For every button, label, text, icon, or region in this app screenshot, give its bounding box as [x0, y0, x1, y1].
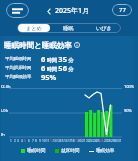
button[interactable]: 睡眠 [52, 24, 85, 32]
staticText: 21 [82, 139, 86, 143]
staticText: 平均就床時間 [5, 65, 32, 71]
staticText: 8 [35, 139, 37, 143]
staticText: 6 時間 56 分 [41, 63, 74, 72]
staticText: まとめ [26, 25, 42, 32]
staticText: 3 [17, 139, 19, 143]
button[interactable]: Sleep score [112, 4, 132, 16]
staticText: 就床時間 [61, 148, 80, 154]
staticText: 18 [71, 139, 75, 143]
staticText: 13 [53, 139, 57, 143]
staticText: 6 時間 35 分 [41, 54, 74, 63]
staticText: 20 [78, 139, 82, 143]
staticText: 31 [118, 139, 122, 143]
staticText: 12.0h [1, 84, 11, 89]
staticText: 11 [46, 139, 50, 143]
staticText: 100% [124, 84, 134, 89]
staticText: 77 [119, 6, 126, 14]
staticText: 睡眠効率 [96, 148, 115, 154]
staticText: 90% [124, 108, 132, 113]
staticText: 9 [39, 139, 41, 143]
staticText: 5 [24, 139, 26, 143]
staticText: 睡眠 [63, 25, 74, 32]
staticText: 平均睡眠時間 [5, 56, 32, 62]
staticText: 10 [42, 139, 46, 143]
staticText: 睡眠時間と睡眠効率 [4, 41, 72, 50]
staticText: 19 [75, 139, 79, 143]
staticText: 平均睡眠効率 [5, 74, 32, 80]
staticText: 14 [57, 139, 61, 143]
staticText: 95% [41, 72, 57, 81]
staticText: 30 [114, 139, 118, 143]
staticText: 睡眠時間 [27, 148, 46, 154]
staticText: 6.0h [1, 108, 9, 113]
staticText: 16 [64, 139, 68, 143]
staticText: 28 [107, 139, 111, 143]
button[interactable]: Previous month [45, 7, 53, 15]
staticText: 7 [32, 139, 34, 143]
button[interactable]: Menu [6, 3, 29, 18]
staticText: 0h [1, 132, 5, 137]
staticText: 2 [14, 139, 16, 143]
staticText: 23 [89, 139, 93, 143]
staticText: 22 [86, 139, 90, 143]
staticText: 26 [100, 139, 104, 143]
staticText: 6 [28, 139, 30, 143]
button[interactable]: Information [74, 42, 80, 48]
staticText: 4 [21, 139, 23, 143]
staticText: 12 [50, 139, 54, 143]
staticText: 27 [104, 139, 108, 143]
staticText: 24 [93, 139, 97, 143]
button[interactable]: いびき [87, 24, 120, 32]
staticText: 15 [60, 139, 64, 143]
staticText: 1 [10, 139, 12, 143]
staticText: 2025年1月 [55, 6, 90, 16]
staticText: 25 [96, 139, 100, 143]
button[interactable]: まとめ [18, 24, 50, 32]
staticText: いびき [96, 25, 112, 32]
staticText: 17 [68, 139, 72, 143]
staticText: 29 [111, 139, 115, 143]
